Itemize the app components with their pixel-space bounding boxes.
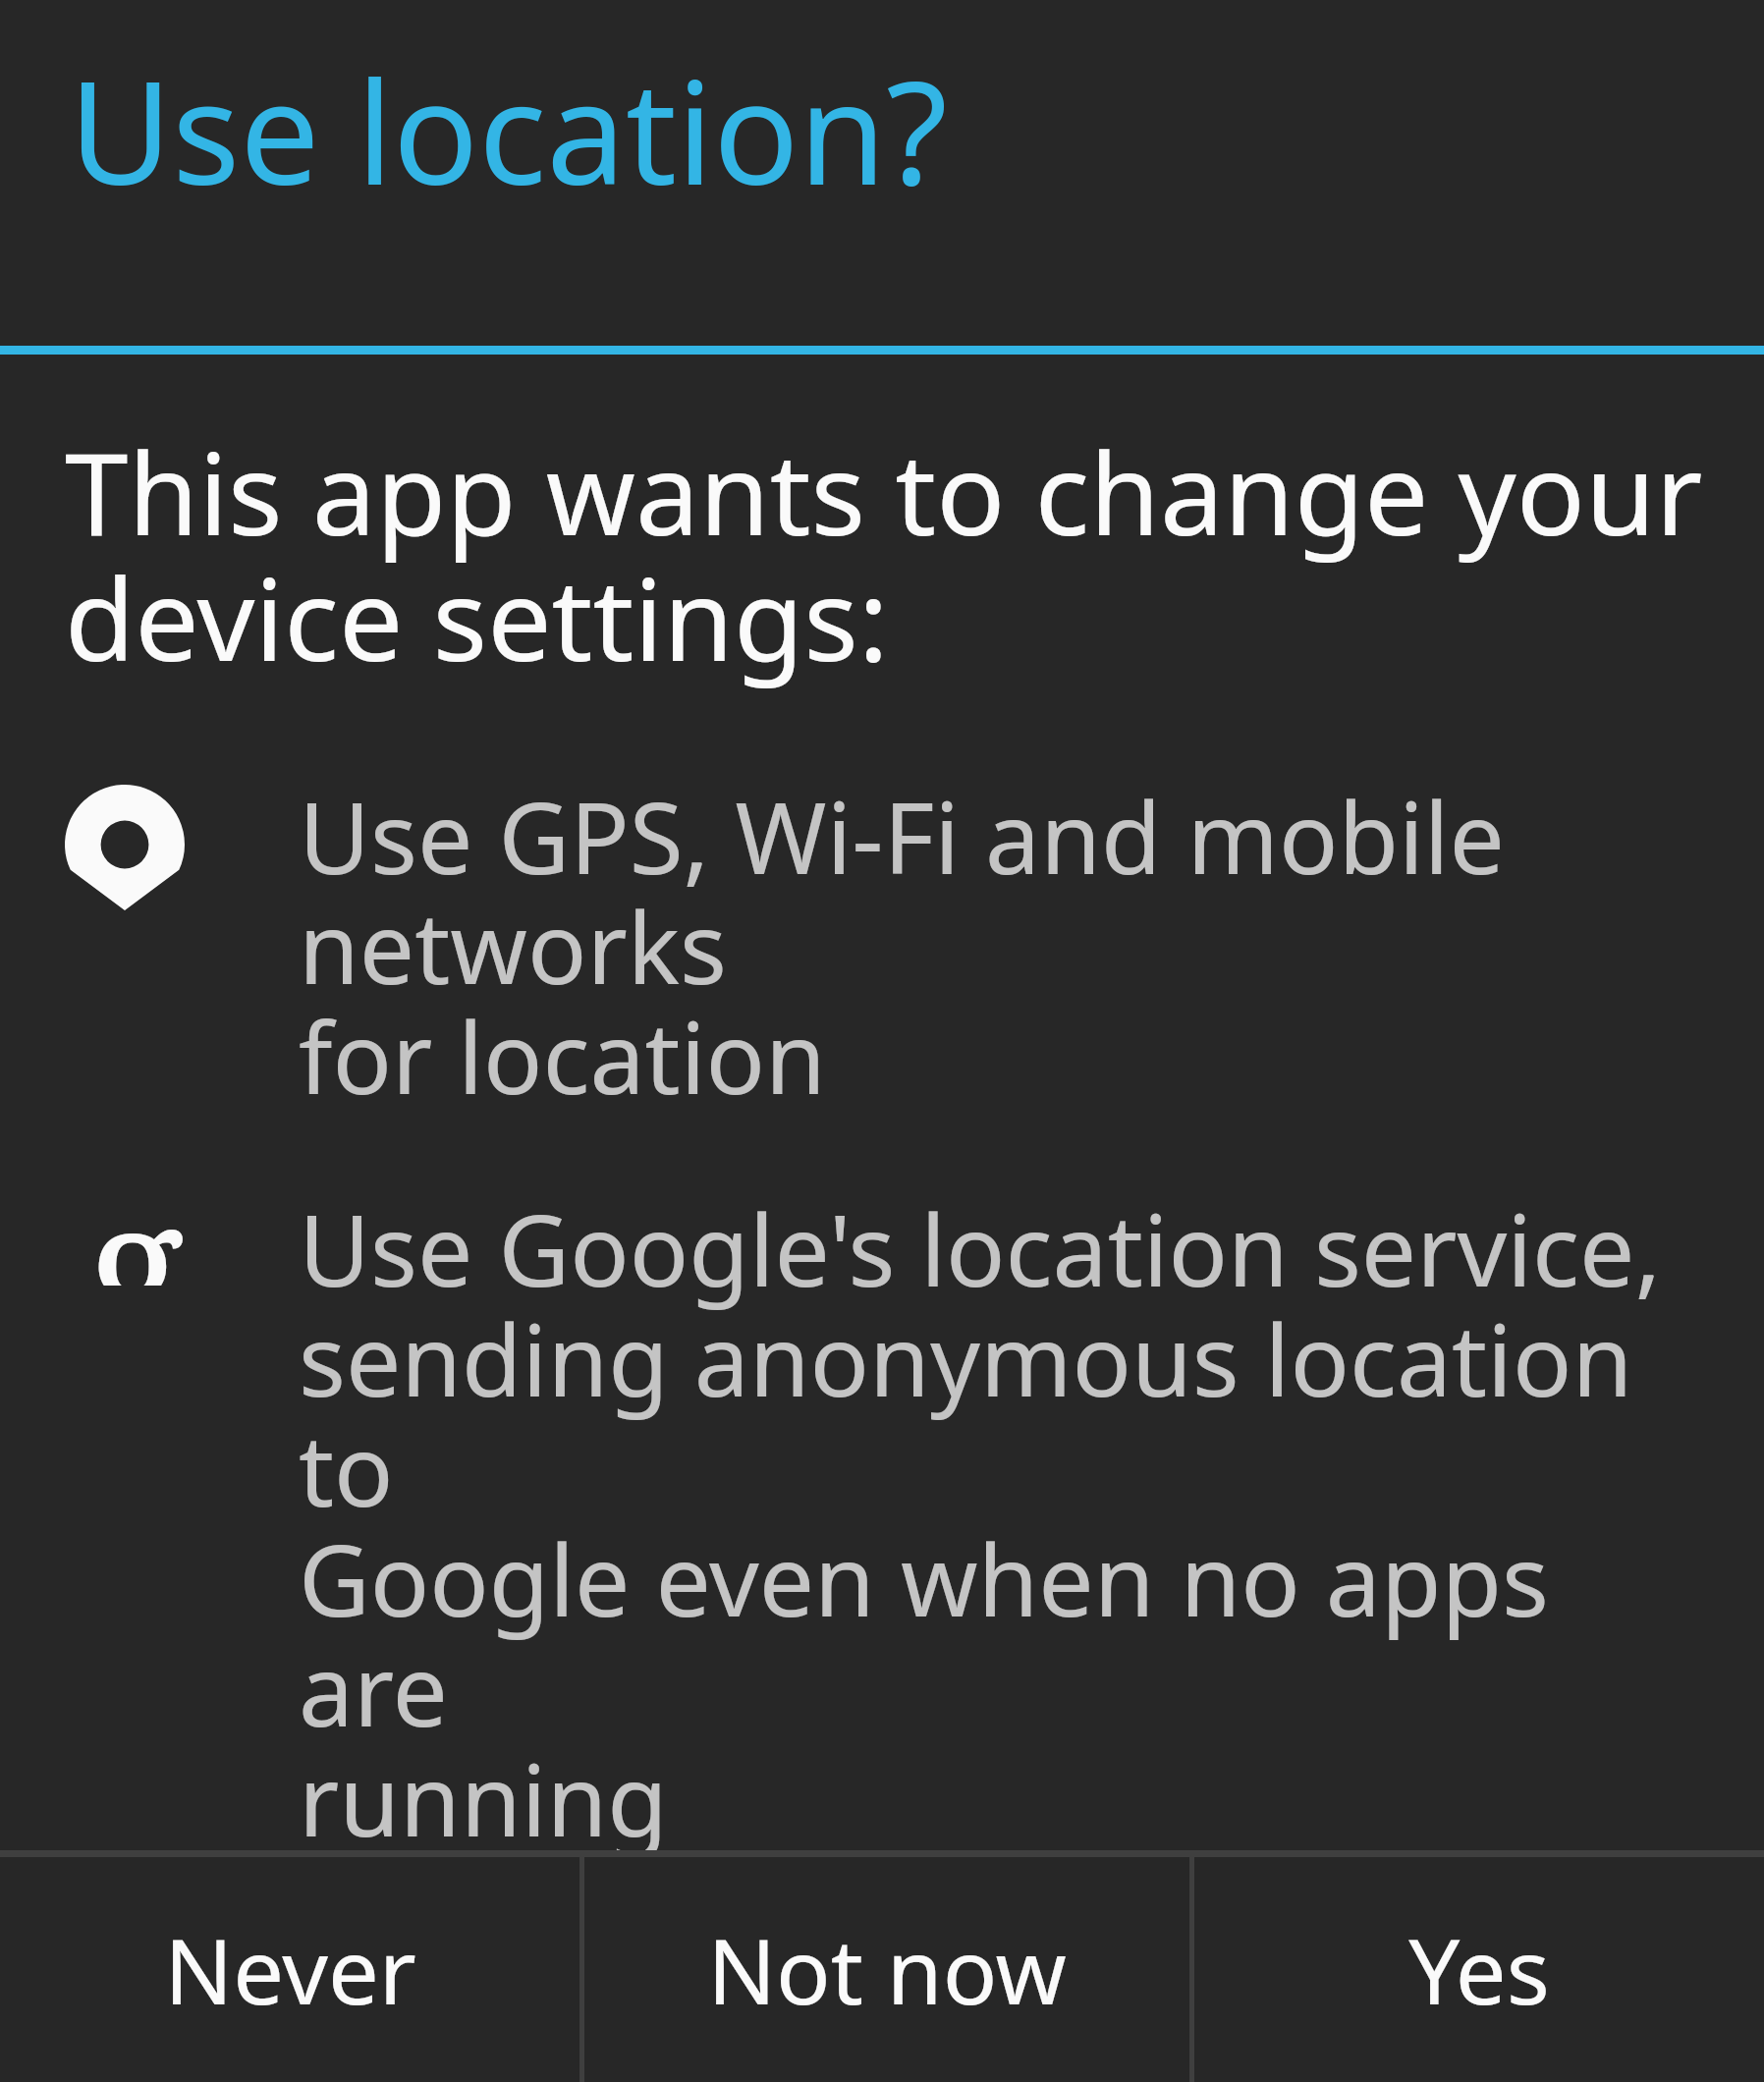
staticText: Use GPS, Wi-Fi and mobile networks for l… — [299, 769, 1715, 1123]
staticText: Yes — [1408, 1908, 1550, 2031]
button[interactable]: Google — [0, 1178, 1764, 1850]
button[interactable]: Yes — [1194, 1857, 1764, 2082]
button[interactable]: Not now — [584, 1857, 1189, 2082]
staticText: Never — [164, 1908, 416, 2031]
staticText: g — [86, 1138, 186, 1286]
button[interactable]: Never — [0, 1857, 579, 2082]
other: Location — [65, 785, 185, 910]
staticText: Use location? — [69, 33, 948, 226]
staticText: This app wants to change your device set… — [65, 413, 1703, 694]
staticText: Use Google's location service, sending a… — [299, 1181, 1715, 1850]
other: Google — [65, 1178, 185, 1325]
button[interactable]: Location — [0, 765, 1764, 1123]
staticText: Not now — [707, 1908, 1067, 2031]
